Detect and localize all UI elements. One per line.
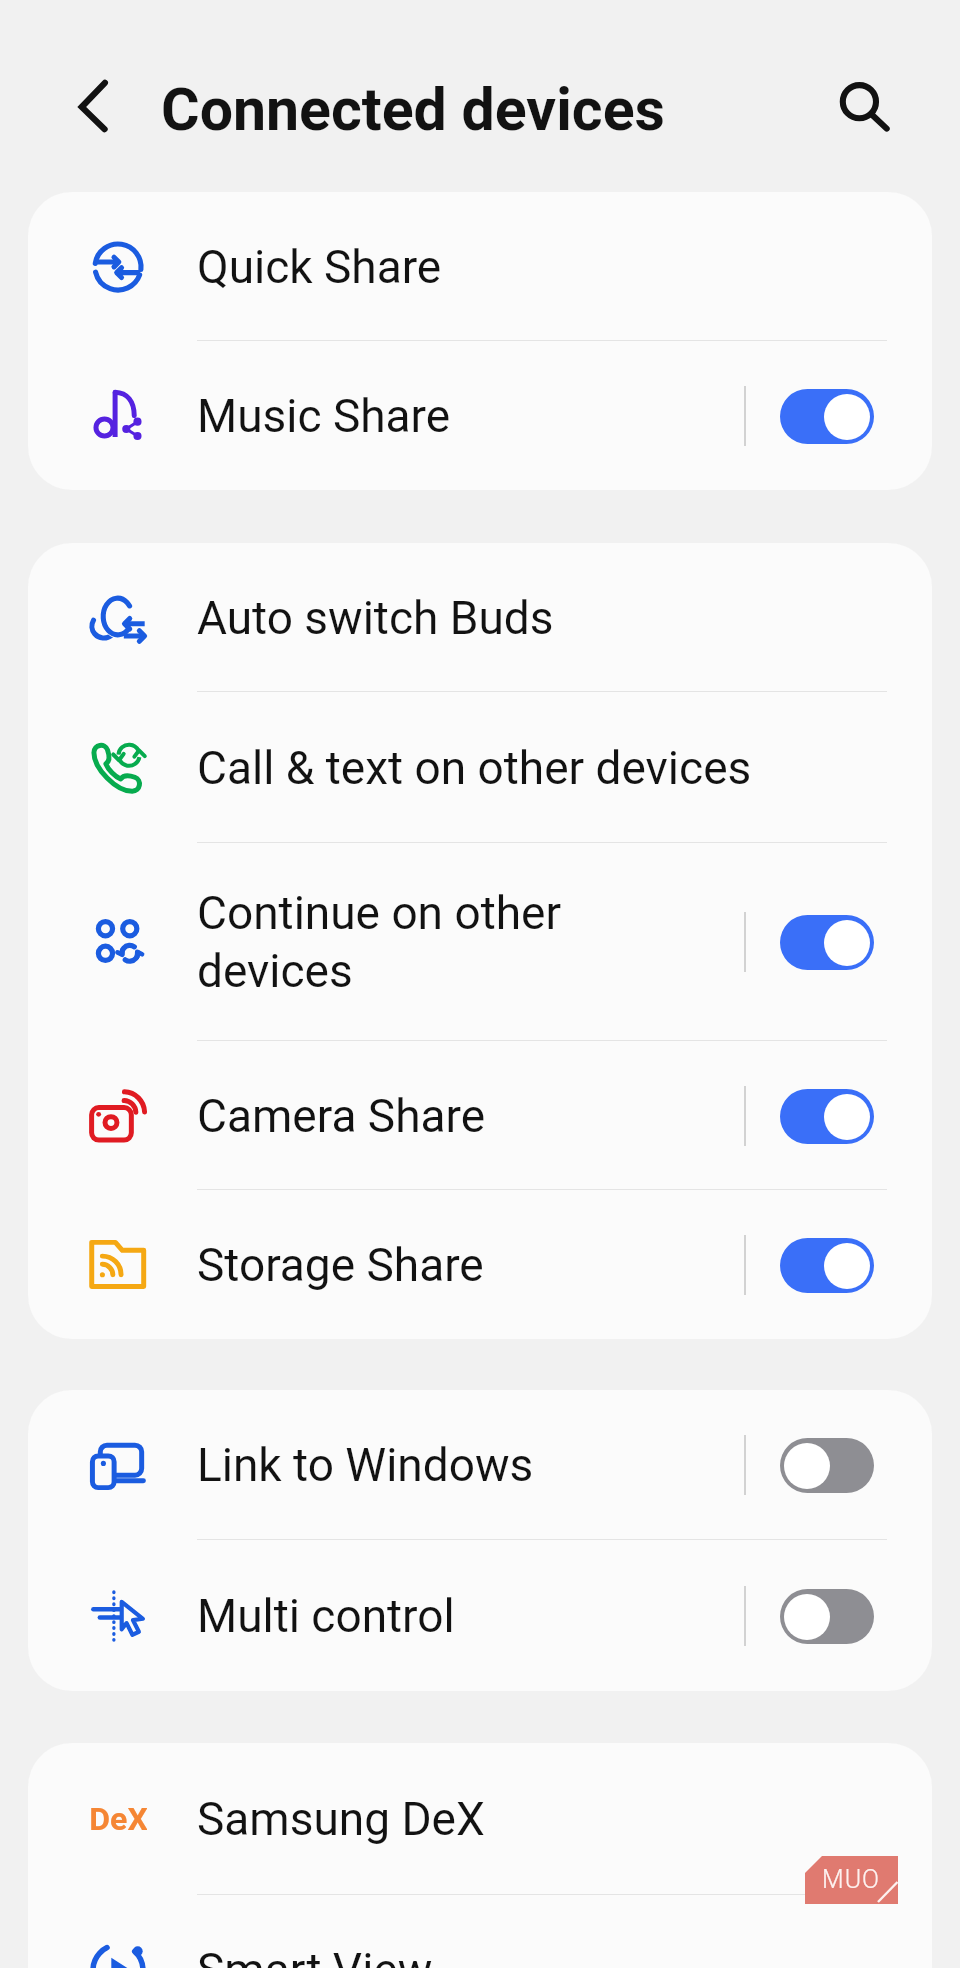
staticText: Continue on other devices <box>197 886 726 999</box>
staticText: Connected devices <box>161 75 665 144</box>
button[interactable]: Link to Windows <box>28 1390 932 1540</box>
staticText: Multi control <box>197 1589 726 1643</box>
button[interactable]: On <box>780 1238 874 1293</box>
button[interactable]: Music Share <box>28 341 932 490</box>
button[interactable]: Back <box>63 71 135 143</box>
button[interactable]: Storage Share <box>28 1190 932 1339</box>
staticText: Quick Share <box>197 240 888 294</box>
button[interactable]: On <box>780 915 874 970</box>
button[interactable]: Call & text on other devices <box>28 692 932 843</box>
button[interactable]: Auto switch Buds <box>28 543 932 692</box>
button[interactable]: On <box>780 1089 874 1144</box>
staticText: Camera Share <box>197 1089 726 1143</box>
staticText: Link to Windows <box>197 1438 726 1492</box>
button[interactable]: Off <box>780 1438 874 1493</box>
button[interactable]: On <box>780 389 874 444</box>
staticText: MUO <box>822 1865 881 1894</box>
button[interactable]: Off <box>780 1589 874 1644</box>
button[interactable]: Quick Share <box>28 192 932 341</box>
staticText: Storage Share <box>197 1238 726 1292</box>
button[interactable]: Smart View <box>28 1895 932 1968</box>
staticText: Auto switch Buds <box>197 591 888 645</box>
staticText: Samsung DeX <box>197 1792 888 1846</box>
staticText: Smart View <box>197 1943 888 1968</box>
staticText: Call & text on other devices <box>197 741 888 795</box>
staticText: Music Share <box>197 389 726 443</box>
button[interactable]: Multi control <box>28 1540 932 1691</box>
button[interactable]: Search <box>824 69 896 141</box>
staticText: DeX <box>89 1800 147 1838</box>
button[interactable]: DeX <box>28 1743 932 1895</box>
button[interactable]: Camera Share <box>28 1041 932 1190</box>
button[interactable]: Continue on other devices <box>28 843 932 1041</box>
